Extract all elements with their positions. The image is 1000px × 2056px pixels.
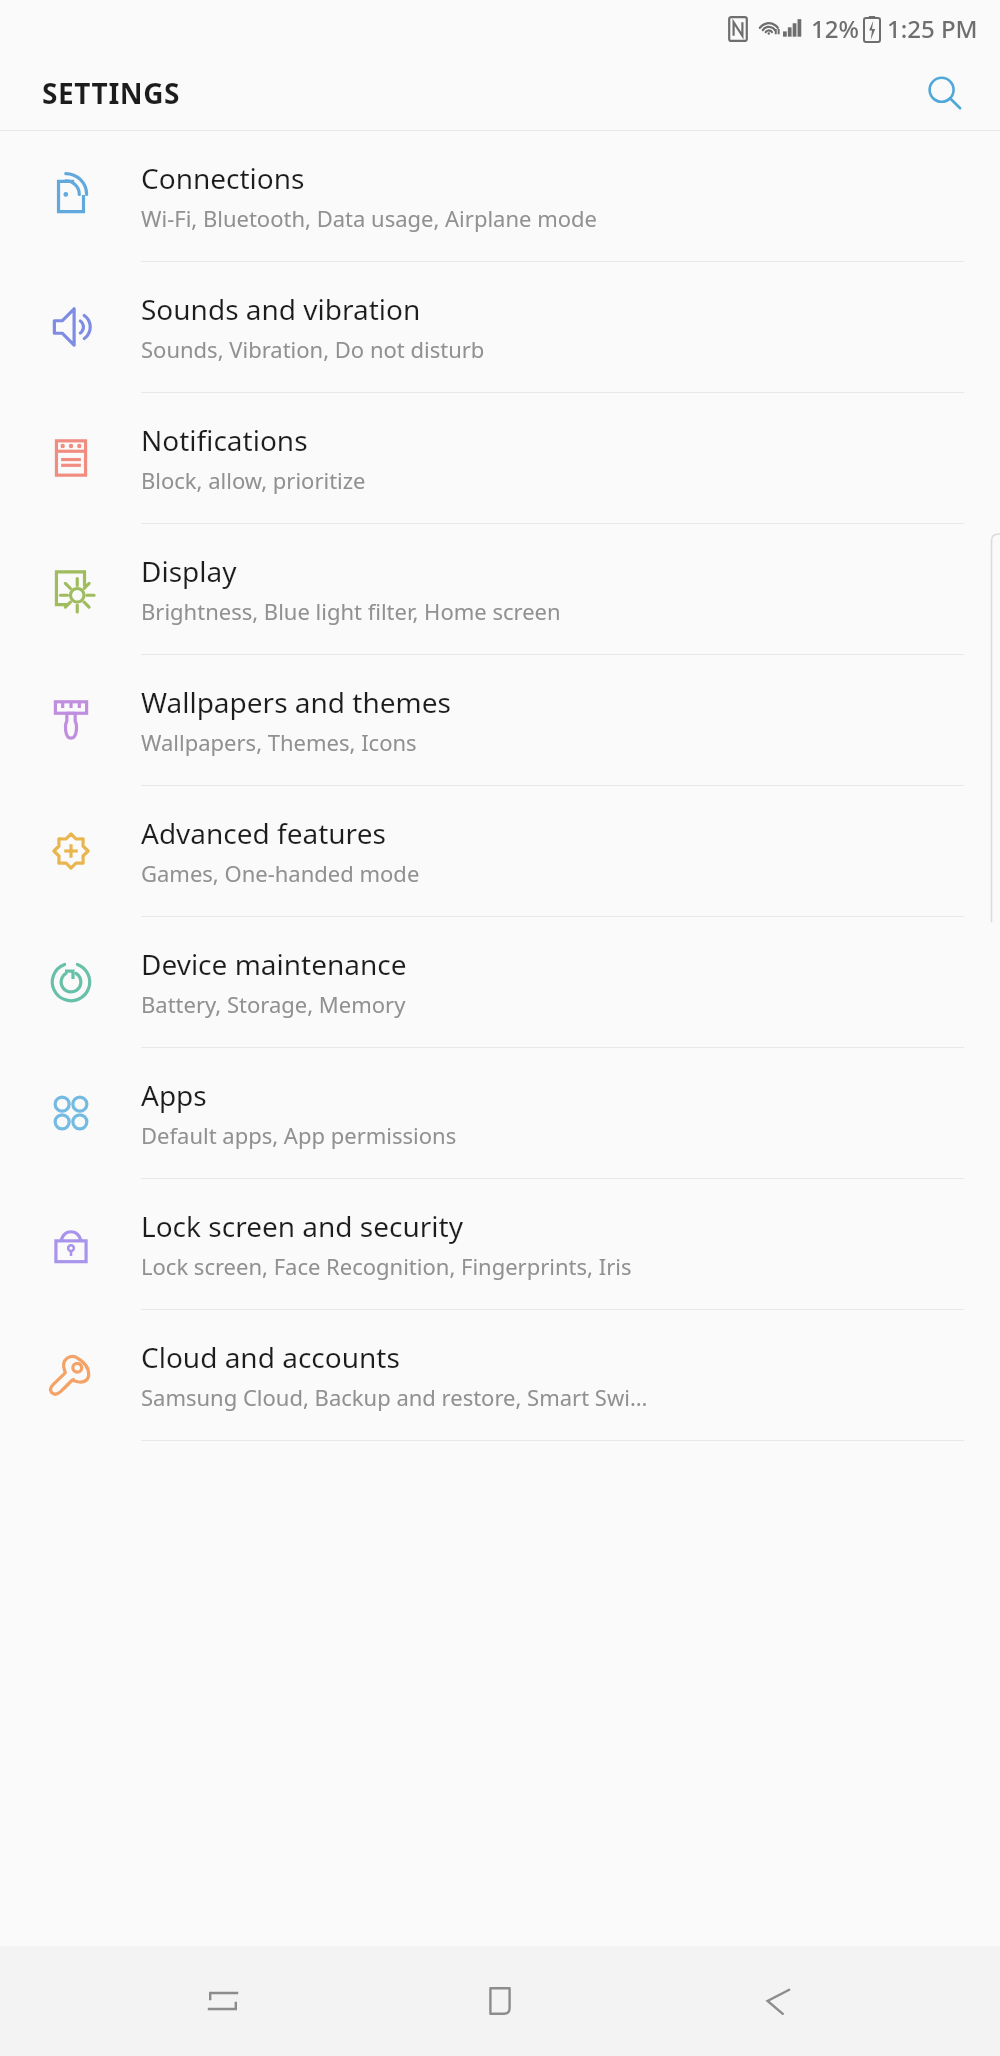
staticText: Wi-Fi, Bluetooth, Data usage, Airplane m… (141, 203, 597, 233)
staticText: Battery, Storage, Memory (141, 989, 406, 1019)
staticText: Advanced features (141, 814, 386, 852)
staticText: Apps (141, 1076, 207, 1114)
button[interactable]: Lock screen and security (0, 1179, 1000, 1310)
button[interactable]: Search (916, 65, 972, 121)
button[interactable]: Display (0, 524, 1000, 655)
button[interactable]: Wallpapers and themes (0, 655, 1000, 786)
staticText: Display (141, 552, 237, 590)
button[interactable]: Device maintenance (0, 917, 1000, 1048)
staticText: Device maintenance (141, 945, 407, 983)
staticText: Lock screen, Face Recognition, Fingerpri… (141, 1251, 632, 1281)
staticText: Connections (141, 159, 305, 197)
staticText: Wallpapers and themes (141, 683, 451, 721)
staticText: Brightness, Blue light filter, Home scre… (141, 596, 561, 626)
staticText: Wallpapers, Themes, Icons (141, 727, 417, 757)
button[interactable]: Notifications (0, 393, 1000, 524)
button[interactable]: Connections (0, 131, 1000, 262)
button[interactable]: Back (723, 1946, 833, 2056)
staticText: Sounds and vibration (141, 290, 421, 328)
button[interactable]: Advanced features (0, 786, 1000, 917)
staticText: Block, allow, prioritize (141, 465, 366, 495)
button[interactable]: Sounds and vibration (0, 262, 1000, 393)
staticText: 1:25 PM (887, 12, 978, 45)
staticText: 12% (811, 12, 859, 45)
button[interactable]: Recents (168, 1946, 278, 2056)
staticText: Cloud and accounts (141, 1338, 400, 1376)
staticText: Notifications (141, 421, 308, 459)
staticText: Sounds, Vibration, Do not disturb (141, 334, 485, 364)
staticText: Samsung Cloud, Backup and restore, Smart… (141, 1382, 648, 1412)
staticText: Default apps, App permissions (141, 1120, 457, 1150)
staticText: Lock screen and security (141, 1207, 463, 1245)
staticText: Games, One-handed mode (141, 858, 420, 888)
staticText: SETTINGS (42, 74, 181, 112)
button[interactable]: Cloud and accounts (0, 1310, 1000, 1441)
button[interactable]: Home (445, 1946, 555, 2056)
button[interactable]: Apps (0, 1048, 1000, 1179)
